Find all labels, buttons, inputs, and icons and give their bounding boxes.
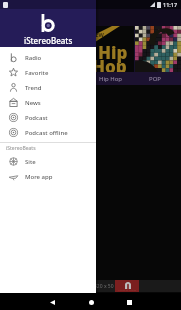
staticText: iStereoBeats <box>6 145 36 152</box>
staticText: More app <box>25 173 53 181</box>
staticText: News <box>25 99 41 107</box>
staticText: Favorite <box>25 69 49 77</box>
staticText: Hip Hop <box>99 75 123 83</box>
button[interactable]: Favorite <box>0 65 96 80</box>
button[interactable]: News <box>0 95 96 110</box>
button[interactable]: More app <box>0 169 96 184</box>
staticText: Podcast offline <box>25 129 68 137</box>
button[interactable]: Home <box>83 294 99 310</box>
staticText: Trend <box>25 84 42 92</box>
button[interactable]: Advertisement <box>115 280 139 292</box>
button[interactable]: Hip Hop <box>99 72 137 85</box>
staticText: Hop <box>92 55 127 78</box>
staticText: POP <box>149 75 161 83</box>
button[interactable]: Radio <box>0 50 96 65</box>
staticText: Hip <box>98 41 128 64</box>
staticText: 11:17 <box>163 1 178 8</box>
staticText: AdMob by Google <box>118 289 137 292</box>
staticText: 320 x 50 <box>94 283 114 290</box>
staticText: iStereoBeats <box>24 35 73 46</box>
staticText: Radio <box>25 54 42 62</box>
staticText: Site <box>25 158 36 166</box>
button[interactable]: Back <box>44 294 60 310</box>
staticText: NEW <box>91 31 104 38</box>
button[interactable]: Recents <box>121 294 137 310</box>
button[interactable]: Trend <box>0 80 96 95</box>
staticText: Podcast <box>25 114 48 122</box>
button[interactable]: Site <box>0 154 96 169</box>
button[interactable]: Podcast offline <box>0 125 96 140</box>
button[interactable]: POP <box>137 72 173 85</box>
button[interactable]: Podcast <box>0 110 96 125</box>
